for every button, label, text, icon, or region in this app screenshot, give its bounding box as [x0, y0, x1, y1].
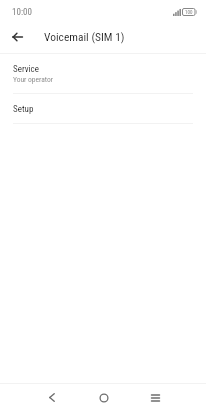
button[interactable]: Home — [78, 384, 129, 412]
staticText: 100 — [185, 9, 193, 15]
button[interactable]: Navigate up — [0, 23, 30, 53]
button[interactable]: Recent apps — [129, 384, 180, 412]
button[interactable]: Service — [0, 54, 206, 93]
staticText: 10:00 — [12, 7, 32, 18]
staticText: Service — [13, 64, 39, 75]
staticText: Your operator — [13, 75, 54, 84]
staticText: Voicemail (SIM 1) — [44, 30, 125, 43]
button[interactable]: Back — [26, 384, 78, 412]
staticText: Setup — [13, 104, 34, 115]
button[interactable]: Setup — [0, 94, 206, 123]
